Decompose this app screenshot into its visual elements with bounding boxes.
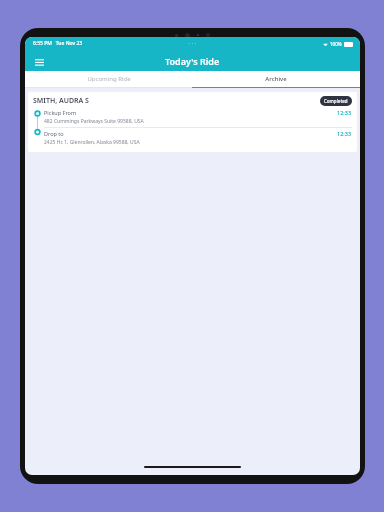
staticText: 12:33 [337, 109, 352, 116]
staticText: 2425 Hc 1, Glenrollen, Alaska 99588, USA [44, 139, 140, 146]
button[interactable]: Open navigation menu [30, 52, 48, 70]
staticText: SMITH, AUDRA S [33, 96, 89, 106]
staticText: Completed [324, 98, 348, 104]
button[interactable]: SMITH, AUDRA S [28, 92, 357, 152]
staticText: 12:33 [337, 130, 352, 137]
staticText: Today's Ride [165, 55, 220, 67]
staticText: 482 Cummings Parkways Suite 99588, USA [44, 118, 144, 125]
staticText: 6:55 PM Tue Nov 23 [33, 40, 83, 47]
staticText: Pickup From [44, 109, 77, 116]
button[interactable]: Upcoming Ride [25, 71, 192, 87]
staticText: Upcoming Ride [87, 75, 131, 83]
staticText: 100% [330, 41, 342, 47]
staticText: Archive [265, 75, 287, 83]
button[interactable]: Archive [192, 71, 360, 87]
staticText: Drop to [44, 130, 64, 137]
